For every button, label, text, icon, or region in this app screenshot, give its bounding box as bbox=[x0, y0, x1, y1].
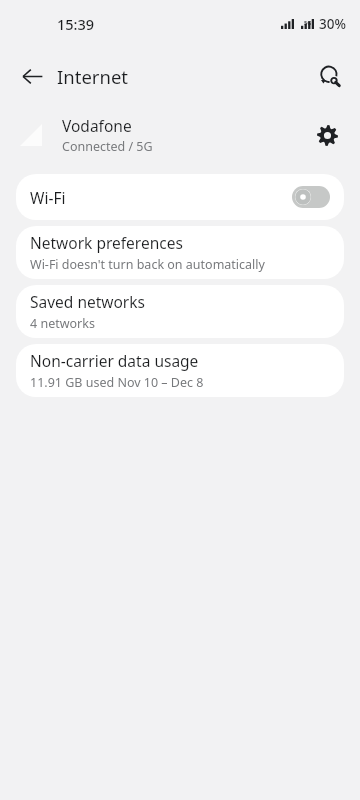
button[interactable]: Saved networks bbox=[16, 285, 344, 338]
button[interactable]: Wi-Fi toggle, off bbox=[292, 186, 330, 208]
staticText: Internet bbox=[57, 64, 129, 89]
button[interactable]: Wi-Fi bbox=[16, 174, 344, 220]
staticText: 11.91 GB used Nov 10 – Dec 8 bbox=[30, 374, 204, 391]
staticText: 4 networks bbox=[30, 315, 95, 332]
button[interactable]: Back bbox=[10, 54, 54, 98]
staticText: 30% bbox=[319, 15, 346, 33]
button[interactable]: Network preferences bbox=[16, 226, 344, 279]
staticText: Wi-Fi bbox=[30, 187, 292, 208]
button[interactable]: Vodafone bbox=[0, 104, 360, 166]
staticText: Wi-Fi doesn't turn back on automatically bbox=[30, 256, 265, 273]
staticText: Non-carrier data usage bbox=[30, 350, 199, 371]
staticText: Connected / 5G bbox=[62, 138, 153, 155]
button[interactable]: Tips and support bbox=[308, 54, 352, 98]
button[interactable]: Non-carrier data usage bbox=[16, 344, 344, 397]
button[interactable]: Carrier settings bbox=[307, 115, 347, 155]
staticText: 15:39 bbox=[57, 14, 95, 34]
staticText: 5G bbox=[304, 19, 312, 26]
staticText: Network preferences bbox=[30, 232, 183, 253]
staticText: Saved networks bbox=[30, 291, 145, 312]
staticText: Vodafone bbox=[62, 115, 132, 136]
